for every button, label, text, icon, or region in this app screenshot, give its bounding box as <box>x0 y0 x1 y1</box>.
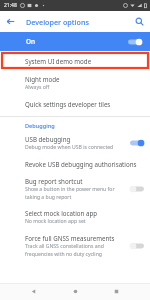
staticText: USB debugging <box>25 135 71 143</box>
button[interactable]: On <box>0 32 150 51</box>
staticText: Show a button in the power menu for <box>25 186 115 193</box>
staticText: Track all GNSS constellations and <box>25 243 104 250</box>
button[interactable]: Bug report shortcut <box>0 174 150 204</box>
staticText: Select mock location app <box>25 209 98 217</box>
staticText: Bug report shortcut <box>25 177 83 185</box>
staticText: Night mode <box>25 75 60 83</box>
staticText: No mock location app set <box>25 218 86 225</box>
button[interactable]: System UI demo mode <box>0 51 150 71</box>
staticText: Debug mode when USB is connected <box>25 144 114 151</box>
staticText: taking a bug report <box>25 194 72 201</box>
staticText: Revoke USB debugging authorisations <box>25 160 137 168</box>
staticText: Force full GNSS measurements <box>25 234 115 242</box>
button[interactable]: Back <box>25 283 42 300</box>
staticText: On <box>26 37 36 46</box>
staticText: Always off <box>25 84 50 91</box>
button[interactable]: Revoke USB debugging authorisations <box>0 157 150 171</box>
button[interactable]: Recent apps <box>108 283 125 300</box>
button[interactable]: Back <box>0 11 21 32</box>
staticText: 21:48 <box>4 2 17 9</box>
button[interactable]: Search <box>129 11 150 32</box>
button[interactable]: Night mode <box>0 72 150 94</box>
staticText: System UI demo mode <box>25 57 92 65</box>
button[interactable]: USB debugging <box>0 132 150 154</box>
staticText: Quick settings developer tiles <box>25 100 111 108</box>
staticText: Debugging <box>25 122 55 130</box>
button[interactable]: Force full GNSS measurements <box>0 231 150 261</box>
staticText: frequencies with no duty cycling <box>25 251 102 258</box>
staticText: Developer options <box>26 17 89 27</box>
button[interactable]: Select mock location app <box>0 206 150 228</box>
button[interactable]: Quick settings developer tiles <box>0 97 150 111</box>
button[interactable]: Home <box>67 283 84 300</box>
